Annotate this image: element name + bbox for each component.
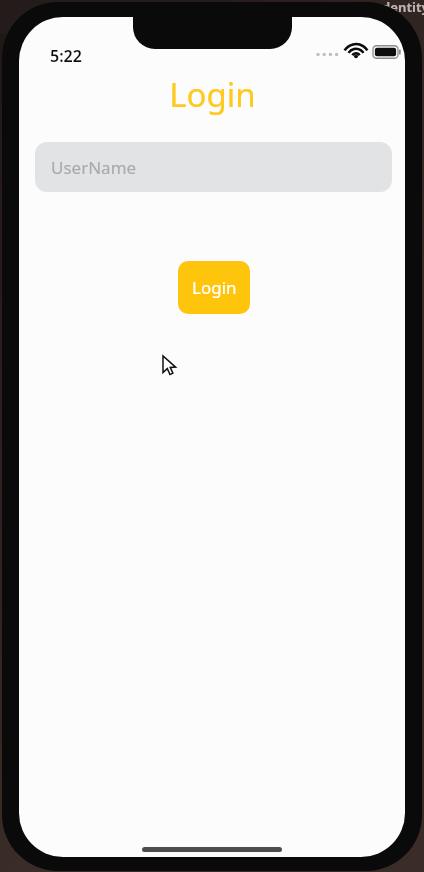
staticText: 5:22 — [50, 45, 82, 67]
staticText: Login — [192, 276, 237, 299]
staticText: Login — [169, 72, 256, 117]
button[interactable]: UserName — [35, 142, 392, 192]
staticText: dentity — [382, 0, 424, 16]
button[interactable]: Login — [178, 261, 250, 314]
staticText: UserName — [51, 156, 137, 179]
